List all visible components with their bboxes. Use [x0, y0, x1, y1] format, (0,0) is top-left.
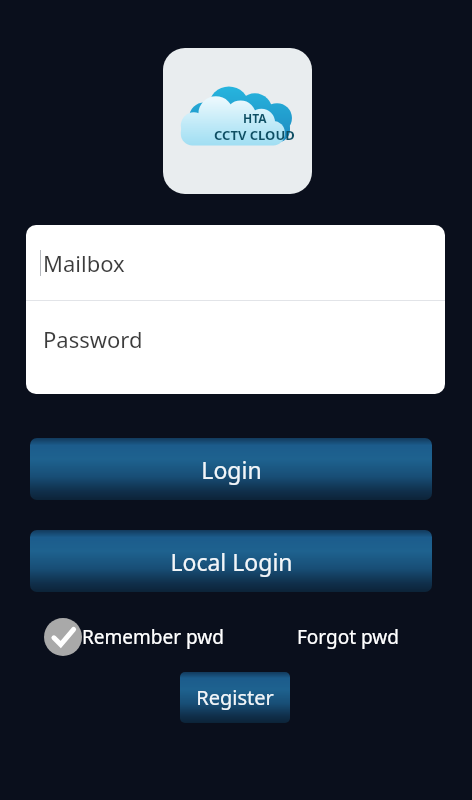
button[interactable]: Local Login — [30, 530, 432, 592]
staticText: Forgot pwd — [297, 624, 399, 650]
staticText: Register — [196, 684, 274, 711]
button[interactable]: Forgot pwd — [290, 617, 406, 657]
staticText: Mailbox — [43, 248, 125, 278]
staticText: Local Login — [170, 546, 293, 577]
staticText: Login — [201, 454, 262, 485]
staticText: Remember pwd — [82, 624, 224, 650]
other: HTA CCTV Cloud logo — [163, 48, 312, 194]
staticText: Password — [43, 324, 143, 354]
staticText: CCTV CLOUD — [214, 126, 295, 144]
button[interactable]: Password — [26, 301, 445, 376]
button[interactable]: Mailbox — [26, 225, 445, 300]
staticText: HTA — [243, 110, 267, 126]
button[interactable]: Register — [180, 672, 290, 723]
button[interactable]: Login — [30, 438, 432, 500]
button[interactable]: Remember pwd — [44, 618, 228, 656]
